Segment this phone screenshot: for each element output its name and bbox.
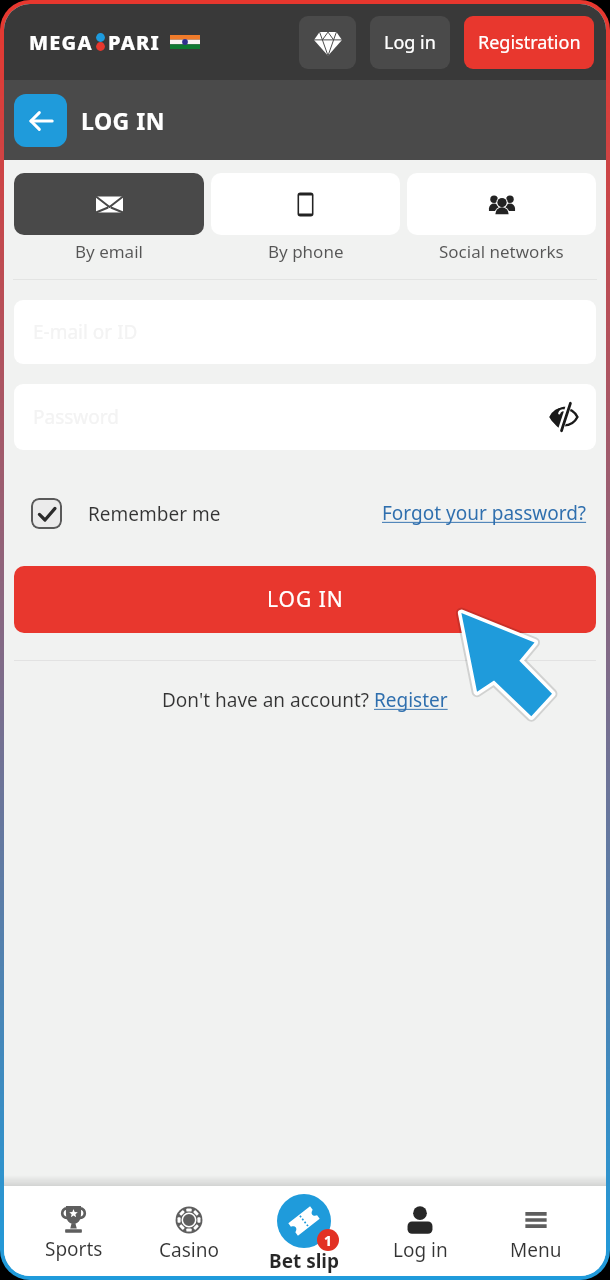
button[interactable]: Social networks [407, 173, 596, 263]
staticText: PARI [108, 29, 161, 56]
staticText: Log in [384, 30, 436, 55]
staticText: Password [33, 404, 119, 430]
staticText: Log in [393, 1237, 448, 1263]
button[interactable]: Register [374, 687, 448, 713]
staticText: Forgot your password? [382, 500, 587, 526]
staticText: Registration [478, 30, 581, 55]
button[interactable]: Password [14, 384, 596, 450]
button[interactable]: LOG IN [14, 566, 596, 633]
button[interactable]: Log in [370, 16, 450, 69]
staticText: Don't have an account? [162, 687, 374, 713]
staticText: Menu [510, 1237, 562, 1263]
button[interactable]: Back [14, 94, 67, 147]
staticText: Social networks [439, 240, 564, 263]
button[interactable]: 1 [246, 1186, 362, 1276]
staticText: 1 [324, 1231, 333, 1250]
staticText: Sports [45, 1236, 103, 1262]
button[interactable]: Log in [362, 1186, 478, 1276]
staticText: MEGA [29, 29, 93, 56]
button[interactable]: Show password [544, 397, 584, 437]
staticText: LOG IN [267, 585, 344, 614]
staticText: By email [75, 240, 143, 263]
button[interactable]: Menu [478, 1186, 594, 1276]
staticText: Register [374, 687, 448, 713]
button[interactable]: Sports [16, 1186, 131, 1276]
staticText: E-mail or ID [33, 319, 138, 345]
button[interactable]: Remember me [31, 498, 221, 529]
button[interactable]: Registration [464, 16, 594, 69]
staticText: By phone [268, 240, 344, 263]
button[interactable]: Forgot your password? [382, 500, 587, 526]
button[interactable]: Bonuses [299, 16, 356, 69]
button[interactable]: Casino [131, 1186, 246, 1276]
button[interactable]: By email [14, 173, 204, 263]
staticText: Bet slip [269, 1248, 340, 1274]
staticText: Remember me [88, 501, 221, 527]
staticText: Casino [159, 1237, 219, 1263]
staticText: LOG IN [81, 105, 165, 136]
button[interactable]: By phone [211, 173, 400, 263]
